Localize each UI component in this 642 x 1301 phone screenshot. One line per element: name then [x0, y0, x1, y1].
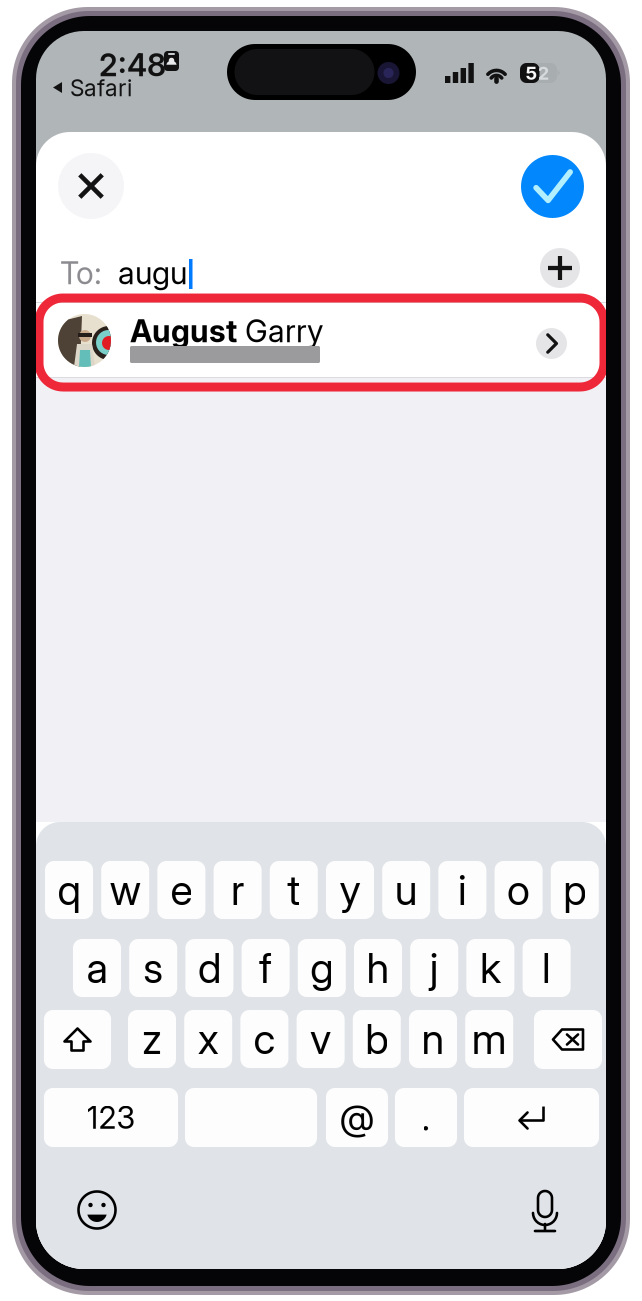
button[interactable]: Done — [521, 155, 584, 218]
button[interactable]: g — [298, 939, 346, 997]
staticText: i — [458, 865, 467, 915]
staticText: v — [310, 1014, 331, 1064]
button[interactable]: Period — [395, 1088, 457, 1147]
button[interactable]: Emoji — [75, 1188, 119, 1232]
staticText: u — [395, 865, 418, 915]
button[interactable]: i — [438, 861, 486, 919]
button[interactable]: z — [128, 1010, 176, 1068]
button[interactable]: u — [382, 861, 430, 919]
button[interactable]: p — [551, 861, 599, 919]
staticText: e — [170, 865, 192, 915]
staticText: j — [430, 943, 439, 993]
button[interactable]: t — [270, 861, 318, 919]
button[interactable]: Delete — [534, 1010, 602, 1069]
staticText: q — [57, 865, 80, 915]
staticText: 123 — [86, 1099, 135, 1136]
staticText: 5 — [525, 62, 537, 84]
staticText: k — [480, 943, 501, 993]
button[interactable]: l — [523, 939, 571, 997]
button[interactable]: Numbers — [44, 1088, 178, 1147]
staticText: z — [142, 1014, 162, 1064]
staticText: . — [421, 1096, 430, 1139]
button[interactable]: n — [409, 1010, 457, 1068]
button[interactable]: o — [495, 861, 543, 919]
button[interactable]: h — [354, 939, 402, 997]
button[interactable]: j — [410, 939, 458, 997]
staticText: August — [130, 312, 237, 349]
button[interactable]: v — [297, 1010, 345, 1068]
button[interactable]: x — [184, 1010, 232, 1068]
button[interactable]: b — [353, 1010, 401, 1068]
button[interactable]: f — [242, 939, 290, 997]
button[interactable]: q — [45, 861, 93, 919]
button[interactable]: Add recipient — [540, 248, 580, 288]
button[interactable]: m — [465, 1010, 513, 1068]
button[interactable]: k — [466, 939, 514, 997]
button[interactable]: Shift — [44, 1010, 111, 1069]
button[interactable]: Return — [464, 1088, 599, 1147]
button[interactable]: e — [157, 861, 205, 919]
staticText: h — [366, 943, 389, 993]
button[interactable]: Close — [58, 153, 124, 219]
staticText: f — [259, 943, 272, 993]
staticText: t — [287, 865, 300, 915]
button[interactable]: Back to Safari — [53, 77, 145, 99]
staticText: Garry — [237, 312, 323, 349]
button[interactable]: August — [36, 302, 606, 378]
staticText: 2 — [537, 62, 549, 84]
staticText: 2:48 — [99, 46, 166, 83]
button[interactable]: a — [73, 939, 121, 997]
staticText: b — [365, 1014, 388, 1064]
staticText: w — [110, 865, 141, 915]
staticText: @ — [339, 1096, 374, 1139]
button[interactable]: At sign — [326, 1088, 388, 1147]
button[interactable]: w — [101, 861, 149, 919]
staticText: x — [198, 1014, 219, 1064]
staticText: m — [472, 1014, 507, 1064]
staticText: r — [231, 865, 244, 915]
button[interactable]: s — [129, 939, 177, 997]
staticText: To: — [60, 254, 102, 291]
staticText: augu — [102, 254, 187, 291]
button[interactable]: r — [214, 861, 262, 919]
staticText: s — [143, 943, 163, 993]
staticText: l — [542, 943, 551, 993]
staticText: a — [86, 943, 107, 993]
staticText: Safari — [70, 74, 132, 102]
staticText: o — [507, 865, 530, 915]
staticText: d — [198, 943, 221, 993]
staticText: n — [421, 1014, 444, 1064]
staticText: c — [253, 1014, 275, 1064]
button[interactable]: y — [326, 861, 374, 919]
button[interactable]: c — [240, 1010, 288, 1068]
staticText: y — [339, 865, 360, 915]
button[interactable]: Dictation — [523, 1188, 567, 1232]
button[interactable]: d — [185, 939, 233, 997]
staticText: g — [310, 943, 333, 993]
staticText: p — [563, 865, 586, 915]
